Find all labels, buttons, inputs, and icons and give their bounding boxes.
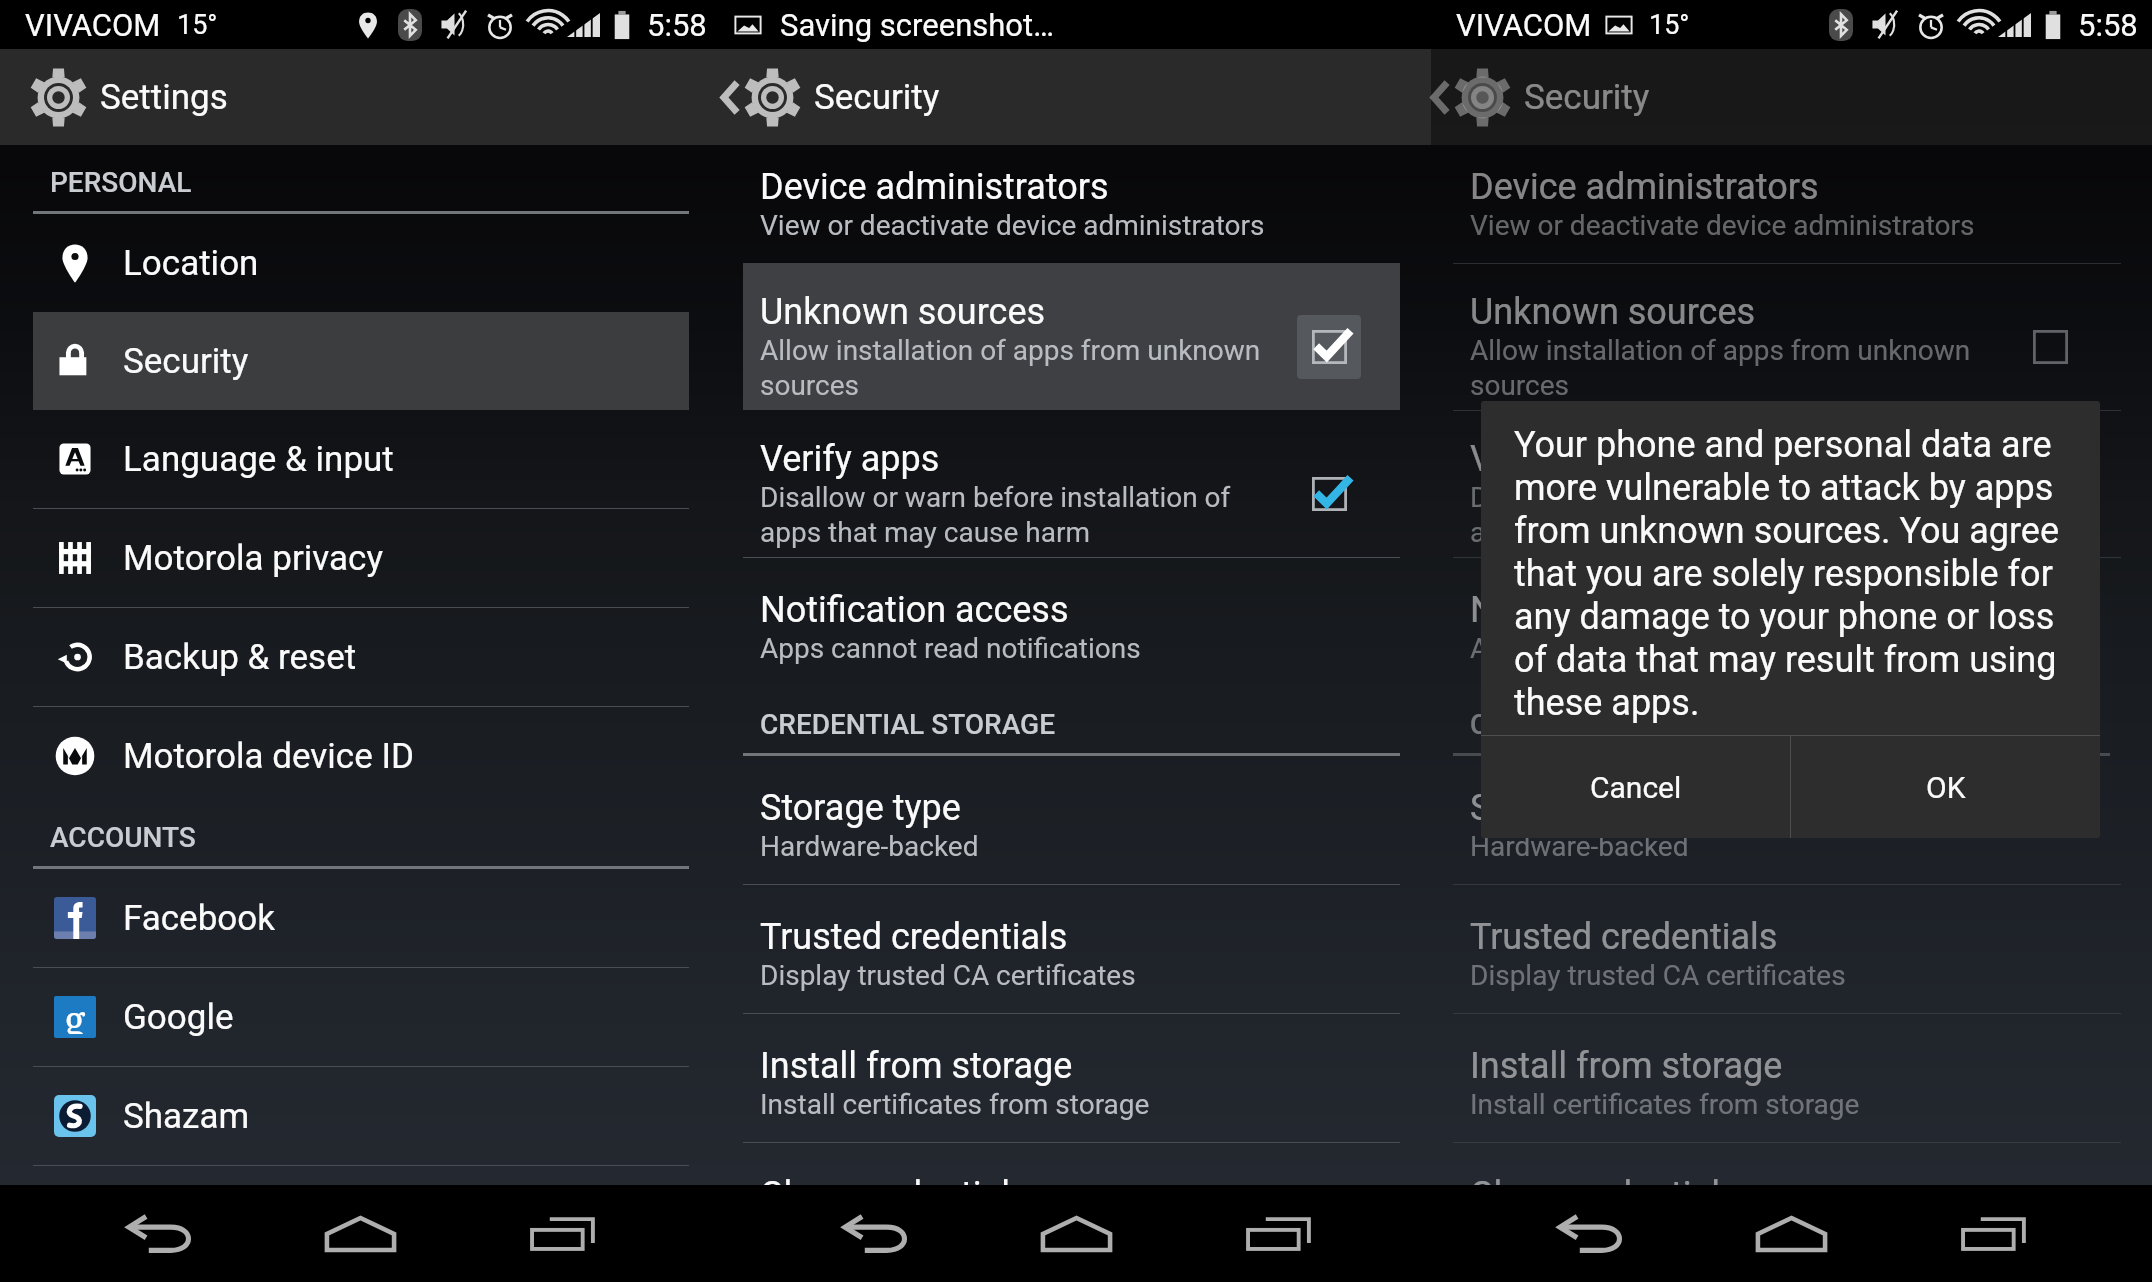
staticText: Motorola privacy [123, 538, 383, 579]
staticText: Security [1524, 77, 1650, 118]
button[interactable]: Recent apps [1177, 1185, 1378, 1282]
button[interactable]: g [33, 968, 689, 1066]
button[interactable]: Language & input [33, 410, 689, 508]
staticText: Verify apps [760, 438, 940, 480]
staticText: Install from storage [1470, 1045, 1783, 1087]
staticText: Display trusted CA certificates [1470, 959, 1846, 992]
staticText: Device administrators [1470, 166, 1819, 208]
staticText: Storage type [760, 787, 961, 829]
button[interactable]: Device administrators [721, 147, 1431, 263]
staticText: g [64, 996, 86, 1034]
staticText: Notification access [1470, 589, 1779, 631]
button[interactable]: Toggle [2018, 315, 2082, 379]
button[interactable]: Storage type [1431, 768, 2152, 884]
button[interactable]: Toggle [1297, 315, 1361, 379]
button[interactable]: Device administrators [1431, 147, 2152, 263]
staticText: Storage type [1470, 787, 1671, 829]
button[interactable]: Navigate up [1431, 49, 1650, 145]
staticText: ACCOUNTS [50, 821, 196, 854]
button[interactable]: Install from storage [1431, 1026, 2152, 1142]
staticText: Clear credentials [760, 1174, 1029, 1185]
button[interactable]: Verify apps [743, 410, 1400, 557]
staticText: Shazam [123, 1096, 250, 1137]
staticText: Google [123, 997, 234, 1038]
staticText: Install certificates from storage [1470, 1088, 1860, 1121]
staticText: Motorola device ID [123, 736, 414, 777]
button[interactable]: Backup & reset [33, 608, 689, 706]
staticText: Facebook [123, 898, 275, 939]
staticText: Install from storage [760, 1045, 1073, 1087]
button[interactable]: Home [1691, 1185, 1892, 1282]
button[interactable]: Settings [0, 49, 228, 145]
staticText: VIVACOM [1456, 7, 1592, 43]
staticText: Hardware-backed [1470, 830, 1689, 863]
button[interactable]: Notification access [1431, 570, 2152, 686]
staticText: Security [814, 77, 940, 118]
button[interactable]: Trusted credentials [1431, 897, 2152, 1013]
button[interactable]: Facebook [33, 869, 689, 967]
staticText: Device administrators [760, 166, 1109, 208]
staticText: Hardware-backed [760, 830, 979, 863]
button[interactable]: Recent apps [461, 1185, 662, 1282]
button[interactable]: OK [1791, 736, 2100, 838]
staticText: 15° [177, 9, 218, 41]
staticText: 15° [1649, 9, 1690, 41]
button[interactable]: Trusted credentials [721, 897, 1431, 1013]
button[interactable]: Back [775, 1185, 976, 1282]
staticText: PERSONAL [50, 166, 192, 199]
staticText: CREDENTIAL STORAGE [760, 708, 1055, 741]
button[interactable]: Unknown sources [743, 263, 1400, 410]
button[interactable]: Install from storage [721, 1026, 1431, 1142]
staticText: Settings [100, 77, 228, 118]
staticText: Allow installation of apps from unknown … [1470, 334, 1971, 402]
button[interactable]: Unknown sources [1453, 263, 2121, 410]
staticText: Security [123, 341, 249, 382]
button[interactable]: Back [59, 1185, 260, 1282]
button[interactable]: Notification access [721, 570, 1431, 686]
button[interactable]: Clear credentials [1431, 1155, 2152, 1185]
staticText: Verify apps [1470, 438, 1650, 480]
staticText: Trusted credentials [1470, 916, 1778, 958]
button[interactable]: Clear credentials [721, 1155, 1431, 1185]
staticText: Saving screenshot… [780, 7, 1054, 43]
staticText: OK [1926, 770, 1966, 805]
button[interactable]: Home [976, 1185, 1177, 1282]
staticText: Your phone and personal data are more vu… [1514, 424, 2070, 724]
button[interactable]: Shazam [33, 1067, 689, 1165]
button[interactable]: Recent apps [1892, 1185, 2093, 1282]
button[interactable]: Storage type [721, 768, 1431, 884]
button[interactable]: Toggle [2018, 462, 2082, 526]
staticText: Disallow or warn before installation of … [760, 481, 1231, 549]
staticText: Location [123, 243, 259, 284]
button[interactable]: Verify apps [1453, 410, 2121, 557]
staticText: Cancel [1590, 770, 1682, 805]
staticText: Unknown sources [760, 291, 1046, 333]
button[interactable]: Security [33, 312, 689, 410]
button[interactable]: Location [33, 214, 689, 312]
staticText: View or deactivate device administrators [1470, 209, 1975, 242]
staticText: Apps cannot read notifications [1470, 632, 1851, 665]
staticText: Notification access [760, 589, 1069, 631]
staticText: Trusted credentials [760, 916, 1068, 958]
staticText: 5:58 [2078, 7, 2138, 43]
staticText: Clear credentials [1470, 1174, 1739, 1185]
staticText: View or deactivate device administrators [760, 209, 1265, 242]
staticText: Unknown sources [1470, 291, 1756, 333]
button[interactable]: Back [1490, 1185, 1691, 1282]
button[interactable]: Toggle [1297, 462, 1361, 526]
staticText: VIVACOM [25, 7, 161, 43]
staticText: CREDENTIAL STORAGE [1470, 708, 1765, 741]
staticText: 5:58 [647, 7, 707, 43]
staticText: Install certificates from storage [760, 1088, 1150, 1121]
button[interactable]: Navigate up [721, 49, 940, 145]
staticText: Apps cannot read notifications [760, 632, 1141, 665]
staticText: Display trusted CA certificates [760, 959, 1136, 992]
staticText: Allow installation of apps from unknown … [760, 334, 1261, 402]
button[interactable]: Motorola privacy [33, 509, 689, 607]
staticText: Disallow or warn before installation of … [1470, 481, 1941, 549]
staticText: Backup & reset [123, 637, 357, 678]
button[interactable]: Home [260, 1185, 461, 1282]
button[interactable]: Motorola device ID [33, 707, 689, 805]
button[interactable]: Cancel [1481, 736, 1790, 838]
staticText: Language & input [123, 439, 394, 480]
